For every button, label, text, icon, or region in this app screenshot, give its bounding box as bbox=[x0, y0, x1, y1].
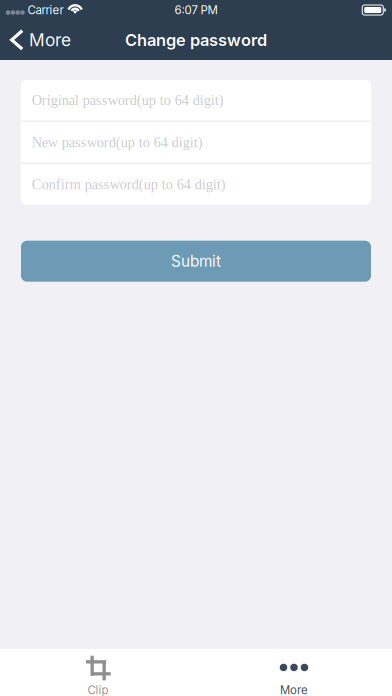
staticText: More bbox=[280, 683, 308, 696]
staticText: 6:07 PM bbox=[174, 3, 217, 17]
staticText: Clip bbox=[87, 683, 108, 696]
button[interactable]: More bbox=[196, 647, 392, 696]
staticText: Confirm password(up to 64 digit) bbox=[32, 177, 226, 192]
staticText: Submit bbox=[171, 252, 221, 270]
button[interactable]: Clip bbox=[0, 647, 196, 696]
button[interactable]: Original password(up to 64 digit) bbox=[21, 80, 371, 120]
staticText: Original password(up to 64 digit) bbox=[32, 92, 224, 108]
button[interactable]: New password(up to 64 digit) bbox=[21, 122, 371, 163]
staticText: More bbox=[29, 29, 71, 50]
button[interactable]: Confirm password(up to 64 digit) bbox=[21, 164, 371, 205]
staticText: Change password bbox=[125, 30, 267, 50]
staticText: New password(up to 64 digit) bbox=[32, 134, 203, 150]
button[interactable]: More bbox=[0, 20, 90, 60]
button[interactable]: Submit bbox=[21, 241, 371, 282]
staticText: Carrier bbox=[27, 3, 63, 17]
